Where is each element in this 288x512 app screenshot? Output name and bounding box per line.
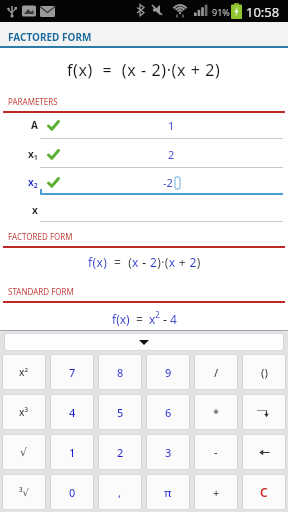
button[interactable]: () xyxy=(242,354,286,390)
button[interactable]: x xyxy=(0,196,288,224)
staticText: ³√ xyxy=(19,485,29,499)
staticText: () xyxy=(261,365,268,380)
staticText: 0 xyxy=(69,485,76,500)
staticText: FACTORED FORM xyxy=(8,231,73,242)
button[interactable]: 7 xyxy=(50,354,94,390)
staticText: √ xyxy=(20,446,28,459)
button[interactable]: 3 xyxy=(146,434,190,470)
button[interactable]: 6 xyxy=(146,394,190,430)
staticText: x2 xyxy=(28,175,38,190)
staticText: f(x) = (x - 2)·(x + 2) xyxy=(67,59,221,81)
button[interactable]: 4 xyxy=(50,394,94,430)
staticText: 7 xyxy=(69,365,76,380)
staticText: A xyxy=(31,118,38,132)
staticText: FACTORED FORM xyxy=(8,30,92,44)
staticText: x1 xyxy=(28,147,38,162)
staticText: x xyxy=(32,203,38,217)
button[interactable]: A xyxy=(0,111,288,139)
staticText: 9 xyxy=(165,365,172,380)
button[interactable]: FACTORED FORM xyxy=(0,22,288,46)
staticText: x³ xyxy=(19,405,29,419)
staticText: 1 xyxy=(168,118,175,133)
button[interactable]: x2 xyxy=(0,168,288,196)
staticText: * xyxy=(213,405,220,420)
button[interactable]: , xyxy=(98,474,142,510)
button[interactable]: - xyxy=(194,434,238,470)
button[interactable]: x² xyxy=(2,354,46,390)
staticText: / xyxy=(214,365,219,380)
button[interactable] xyxy=(4,333,284,351)
staticText: - xyxy=(214,445,218,460)
staticText: + xyxy=(213,485,220,500)
staticText: STANDARD FORM xyxy=(8,286,74,297)
staticText: 5 xyxy=(117,405,124,420)
staticText: 2 xyxy=(117,445,124,460)
staticText: -2 xyxy=(163,175,173,190)
staticText: 10:58 xyxy=(246,3,280,21)
button[interactable]: ³√ xyxy=(2,474,46,510)
staticText: , xyxy=(118,485,122,500)
button[interactable]: √ xyxy=(2,434,46,470)
staticText: f(x) = x2 - 4 xyxy=(112,309,177,327)
staticText: 4 xyxy=(69,405,76,420)
staticText: 3 xyxy=(165,445,172,460)
button[interactable] xyxy=(242,394,286,430)
button[interactable]: x³ xyxy=(2,394,46,430)
staticText: π xyxy=(164,485,172,500)
button[interactable]: x1 xyxy=(0,140,288,168)
button[interactable]: 9 xyxy=(146,354,190,390)
button[interactable]: * xyxy=(194,394,238,430)
button[interactable]: / xyxy=(194,354,238,390)
button[interactable] xyxy=(242,434,286,470)
button[interactable]: 2 xyxy=(98,434,142,470)
button[interactable]: π xyxy=(146,474,190,510)
button[interactable]: C xyxy=(242,474,286,510)
staticText: 1 xyxy=(69,445,76,460)
button[interactable]: 8 xyxy=(98,354,142,390)
staticText: x² xyxy=(19,365,29,379)
staticText: C xyxy=(260,484,268,500)
staticText: PARAMETERS xyxy=(8,96,58,107)
button[interactable]: + xyxy=(194,474,238,510)
staticText: f(x) = (x - 2)·(x + 2) xyxy=(88,254,201,270)
staticText: 91% xyxy=(212,6,230,18)
staticText: 2 xyxy=(168,147,175,162)
button[interactable]: 1 xyxy=(50,434,94,470)
button[interactable]: 5 xyxy=(98,394,142,430)
staticText: 8 xyxy=(117,365,124,380)
button[interactable]: 0 xyxy=(50,474,94,510)
staticText: 6 xyxy=(165,405,172,420)
